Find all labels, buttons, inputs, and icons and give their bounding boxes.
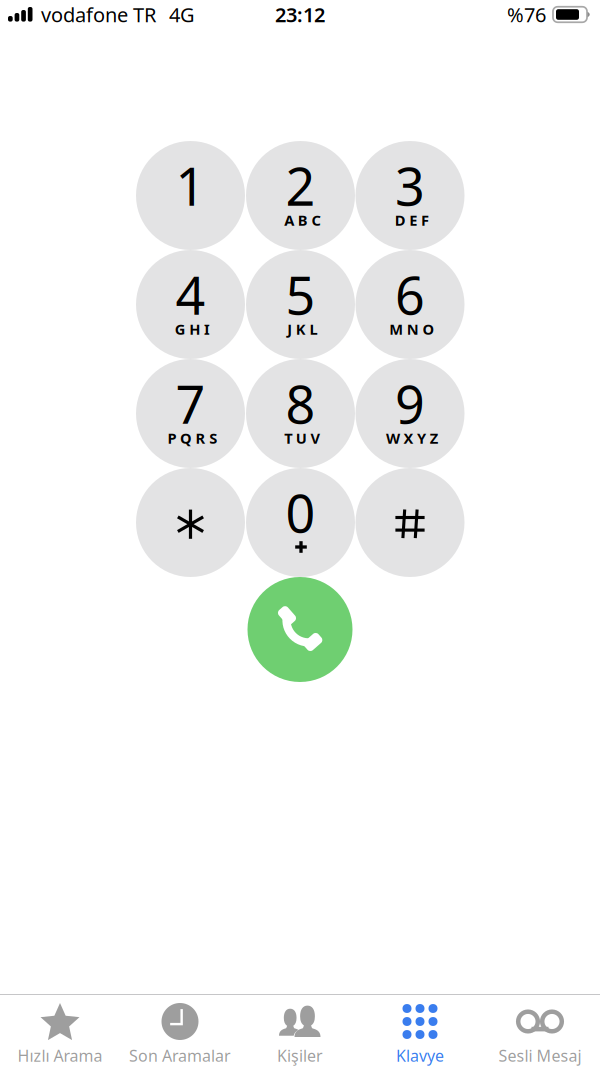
staticText: %76	[507, 1, 546, 28]
staticText: 3	[395, 151, 425, 220]
button[interactable]: 2	[246, 141, 355, 250]
staticText: 8	[285, 369, 315, 438]
button[interactable]: 1	[136, 141, 245, 250]
staticText: DEF	[395, 210, 429, 230]
button[interactable]: 5	[246, 250, 355, 359]
staticText: 2	[285, 151, 315, 220]
staticText: 7	[175, 369, 205, 438]
staticText: JKL	[287, 319, 317, 339]
staticText: MNO	[389, 319, 434, 339]
staticText: 5	[285, 260, 315, 329]
staticText: vodafone TR	[41, 1, 156, 28]
button[interactable]: Pound	[355, 468, 464, 577]
staticText: 4G	[169, 1, 195, 28]
staticText: 0	[285, 478, 315, 547]
button[interactable]: Klavye	[360, 995, 480, 1067]
button[interactable]: Sesli Mesaj	[480, 995, 600, 1067]
button[interactable]: 0	[246, 468, 355, 577]
button[interactable]: 6	[355, 250, 464, 359]
button[interactable]: 9	[355, 359, 464, 468]
staticText: WXYZ	[386, 428, 438, 448]
staticText: 4	[175, 260, 205, 329]
button[interactable]: Call	[247, 577, 352, 682]
staticText: Hızlı Arama	[17, 1045, 102, 1066]
staticText: 1	[175, 151, 205, 220]
staticText: 23:12	[275, 1, 325, 28]
button[interactable]: 7	[136, 359, 245, 468]
button[interactable]: Son Aramalar	[120, 995, 240, 1067]
button[interactable]: Hızlı Arama	[0, 995, 120, 1067]
button[interactable]: 3	[355, 141, 464, 250]
staticText: TUV	[284, 428, 320, 448]
button[interactable]: 4	[136, 250, 245, 359]
staticText: GHI	[175, 319, 210, 339]
staticText: 9	[395, 369, 425, 438]
staticText: PQRS	[167, 428, 217, 448]
button[interactable]: 8	[246, 359, 355, 468]
staticText: ABC	[284, 210, 320, 230]
staticText: Klavye	[396, 1045, 444, 1066]
staticText: Sesli Mesaj	[498, 1045, 581, 1066]
button[interactable]: Kişiler	[240, 995, 360, 1067]
staticText: 6	[395, 260, 425, 329]
staticText: Son Aramalar	[129, 1045, 231, 1066]
button[interactable]: Star	[136, 468, 245, 577]
staticText: Kişiler	[277, 1045, 323, 1066]
